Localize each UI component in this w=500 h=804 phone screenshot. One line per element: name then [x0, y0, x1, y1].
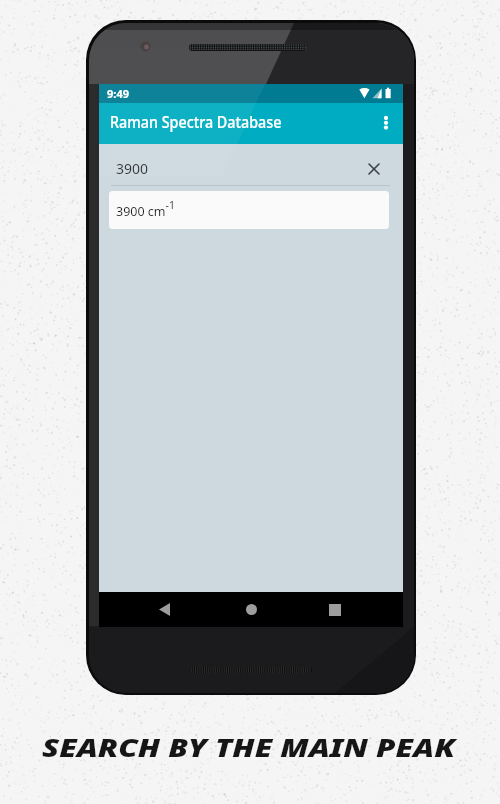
- button[interactable]: Back: [143, 592, 185, 627]
- staticText: 3900 cm-1: [116, 198, 175, 219]
- button[interactable]: Clear search: [361, 156, 387, 182]
- staticText: Raman Spectra Database: [110, 111, 282, 133]
- button[interactable]: Home: [230, 592, 272, 627]
- button[interactable]: Recents: [314, 592, 356, 627]
- staticText: 3900: [116, 159, 149, 178]
- staticText: 9:49: [107, 86, 129, 101]
- button[interactable]: 3900 cm-1: [109, 191, 389, 229]
- staticText: SEARCH BY THE MAIN PEAK: [42, 730, 456, 764]
- button[interactable]: More options: [365, 105, 403, 143]
